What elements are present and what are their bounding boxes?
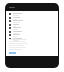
button[interactable] [6, 12, 58, 16]
button[interactable]: App bar [6, 3, 58, 11]
button[interactable] [6, 30, 58, 34]
button[interactable] [6, 23, 58, 27]
button[interactable] [6, 19, 58, 23]
button[interactable] [6, 37, 58, 41]
button[interactable] [6, 33, 58, 37]
button[interactable] [6, 16, 58, 20]
button[interactable] [6, 26, 58, 30]
